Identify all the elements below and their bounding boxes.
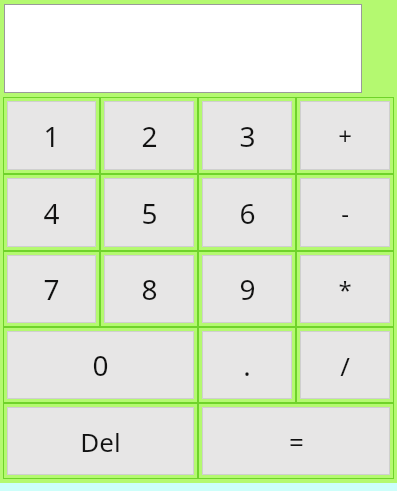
button[interactable]: 9 — [204, 257, 290, 321]
button[interactable]: 7 — [9, 257, 94, 321]
button[interactable]: 1 — [9, 103, 94, 168]
button[interactable]: 6 — [204, 180, 290, 245]
staticText: 6 — [239, 194, 256, 232]
button[interactable]: * — [302, 257, 388, 321]
button[interactable]: + — [302, 103, 388, 168]
staticText: 9 — [239, 270, 256, 308]
staticText: 7 — [43, 270, 60, 308]
staticText: 3 — [239, 117, 256, 155]
staticText: 1 — [43, 117, 60, 155]
button[interactable]: 5 — [106, 180, 192, 245]
button[interactable]: Del — [9, 409, 192, 473]
button[interactable]: 4 — [9, 180, 94, 245]
staticText: 4 — [43, 194, 60, 232]
button[interactable]: 8 — [106, 257, 192, 321]
staticText: Del — [80, 424, 121, 459]
button[interactable]: / — [302, 333, 388, 397]
staticText: / — [340, 348, 350, 383]
button[interactable]: 3 — [204, 103, 290, 168]
button[interactable]: = — [204, 409, 388, 473]
staticText: - — [341, 196, 349, 229]
button[interactable]: 0 — [9, 333, 192, 397]
staticText: 2 — [141, 117, 158, 155]
staticText: 5 — [141, 194, 158, 232]
staticText: 8 — [141, 270, 158, 308]
staticText: . — [243, 346, 251, 384]
button[interactable]: . — [204, 333, 290, 397]
staticText: 0 — [92, 346, 109, 384]
button[interactable]: 2 — [106, 103, 192, 168]
button[interactable]: - — [302, 180, 388, 245]
button[interactable] — [4, 4, 362, 93]
staticText: + — [338, 119, 352, 152]
staticText: = — [289, 424, 304, 459]
staticText: * — [338, 273, 352, 306]
